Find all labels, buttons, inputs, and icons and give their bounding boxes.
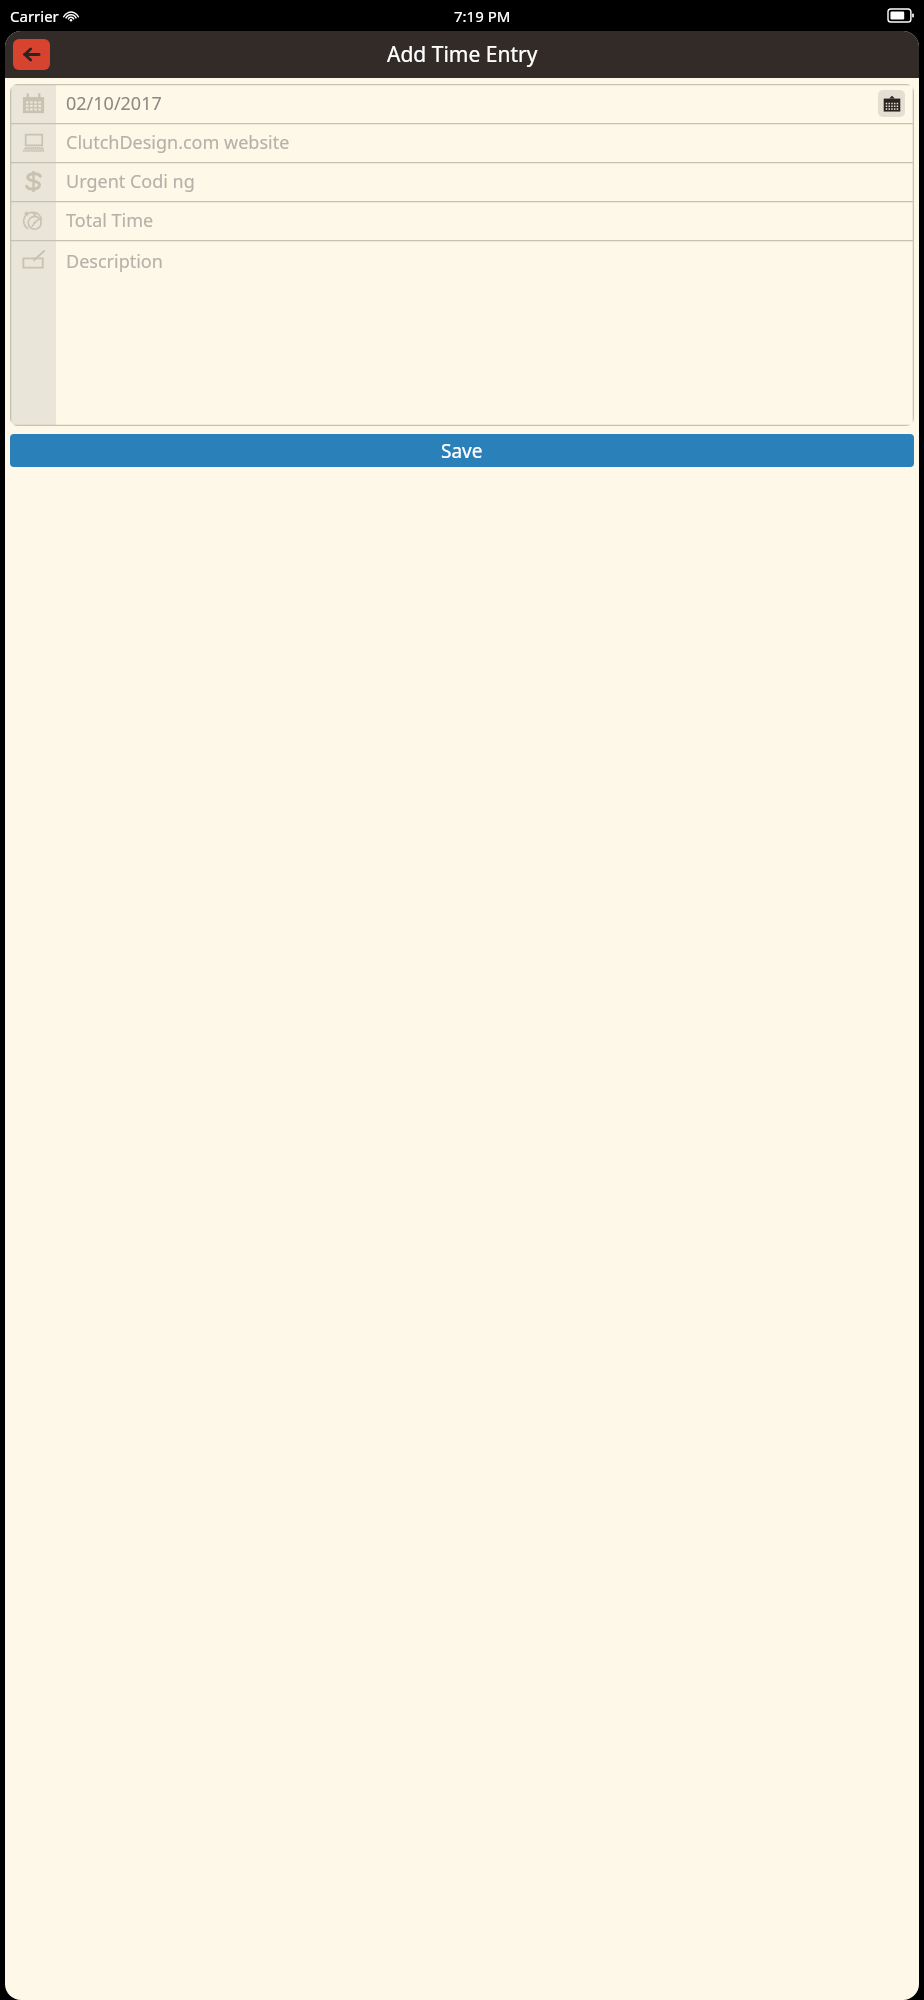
button[interactable]: Save	[10, 434, 914, 467]
button[interactable]: Urgent Codi ng	[10, 162, 914, 201]
button[interactable]: Back	[13, 39, 50, 70]
staticText: Carrier	[10, 6, 59, 26]
staticText: Add Time Entry	[387, 40, 538, 69]
staticText: Total Time	[66, 208, 154, 233]
staticText: 7:19 PM	[454, 6, 511, 26]
staticText: Save	[441, 438, 483, 464]
staticText: 02/10/2017	[66, 91, 162, 116]
staticText: ClutchDesign.com website	[66, 130, 290, 155]
button[interactable]: Total Time	[10, 201, 914, 240]
button[interactable]: ClutchDesign.com website	[10, 123, 914, 162]
button[interactable]: Pick date	[878, 90, 905, 117]
button[interactable]: 02/10/2017	[10, 84, 914, 123]
staticText: Urgent Codi ng	[66, 169, 195, 194]
button[interactable]: Description	[10, 240, 914, 426]
staticText: Description	[66, 249, 163, 274]
